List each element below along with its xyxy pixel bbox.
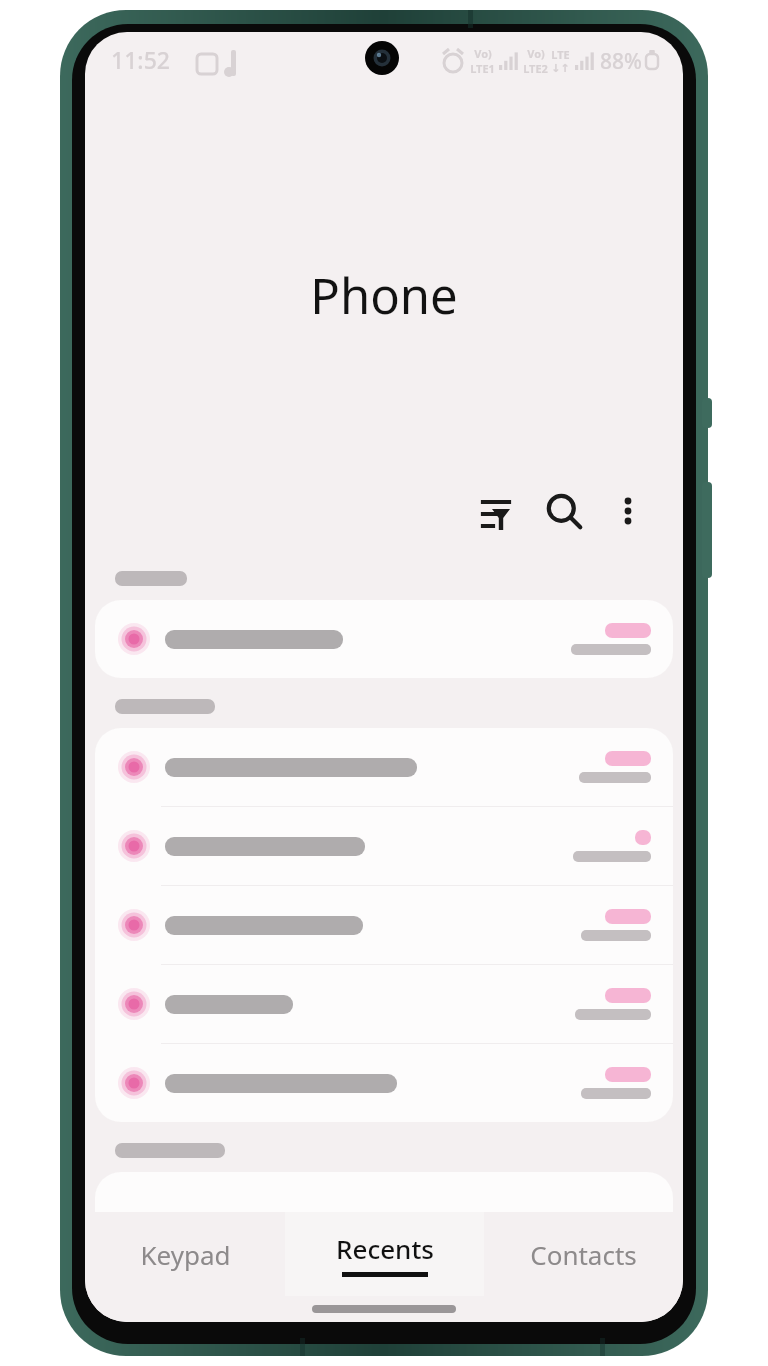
staticText: Keypad [140,1237,231,1272]
button[interactable]: More options [597,480,659,542]
staticText: 88% [600,47,642,76]
button[interactable] [95,886,673,964]
button[interactable]: Contacts [484,1212,683,1296]
button[interactable] [95,1044,673,1122]
staticText: LTE [551,47,570,62]
staticText: Phone [310,262,458,329]
staticText: LTE2 [523,61,548,76]
button[interactable] [95,728,673,806]
staticText: Vo) [527,46,545,61]
button[interactable]: Sort [467,480,529,542]
button[interactable]: Search [533,480,595,542]
staticText: Vo) [474,46,492,61]
button[interactable]: Recents [285,1212,484,1296]
button[interactable] [95,600,673,678]
staticText: 11:52 [111,44,170,75]
button[interactable] [95,965,673,1043]
button[interactable] [95,807,673,885]
staticText: LTE1 [470,61,495,76]
button[interactable]: Keypad [85,1212,285,1296]
staticText: Recents [336,1231,434,1266]
staticText: ↓↑ [551,62,570,75]
staticText: Contacts [530,1237,637,1272]
